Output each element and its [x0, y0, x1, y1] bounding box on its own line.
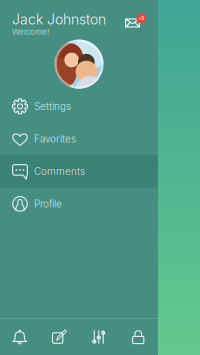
button[interactable]: Notifications	[0, 319, 39, 355]
staticText: Profile	[34, 198, 62, 210]
staticText: Settings	[34, 100, 71, 112]
button[interactable]: Compose	[39, 319, 79, 355]
staticText: +9	[138, 15, 144, 21]
button[interactable]: Profile	[0, 188, 158, 220]
button[interactable]: Favorites	[0, 123, 158, 155]
staticText: Comments	[34, 165, 85, 177]
button[interactable]: Lock	[118, 319, 158, 355]
staticText: Favorites	[34, 133, 76, 145]
staticText: Welcome!	[12, 27, 49, 37]
button[interactable]: Adjust	[79, 319, 118, 355]
button[interactable]: Messages	[125, 11, 146, 31]
button[interactable]: Settings	[0, 90, 158, 123]
button[interactable]: Comments	[0, 155, 158, 188]
staticText: Jack Johnston	[12, 11, 106, 28]
